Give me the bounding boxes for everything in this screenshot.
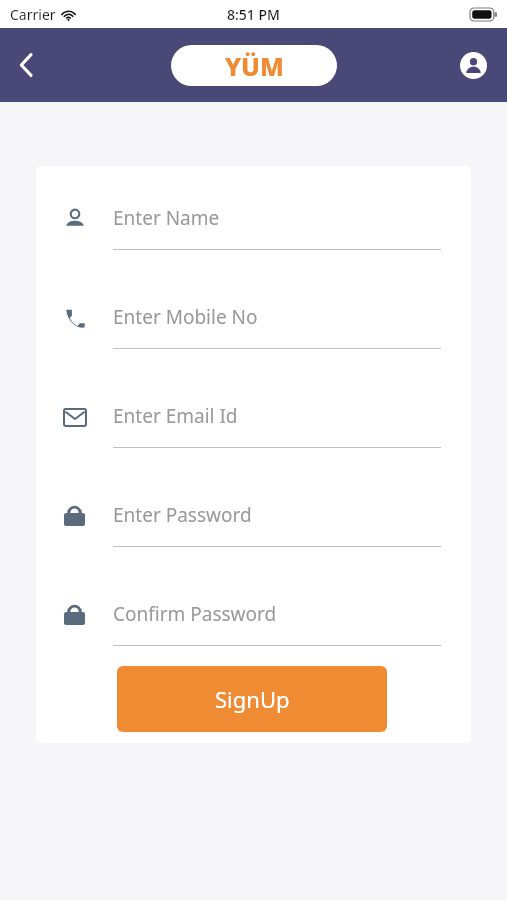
button[interactable]: Profile — [453, 45, 493, 85]
staticText: Enter Email Id — [113, 403, 238, 429]
staticText: Carrier — [10, 5, 56, 24]
staticText: Confirm Password — [113, 601, 277, 627]
button[interactable]: Enter Name — [36, 204, 471, 250]
button[interactable]: Confirm Password — [36, 600, 471, 646]
button[interactable]: Enter Mobile No — [36, 303, 471, 349]
staticText: Enter Name — [113, 205, 220, 231]
staticText: 8:51 PM — [227, 5, 280, 24]
button[interactable]: Enter Password — [36, 501, 471, 547]
staticText: Enter Mobile No — [113, 304, 258, 330]
button[interactable]: Enter Email Id — [36, 402, 471, 448]
staticText: SignUp — [215, 684, 290, 714]
button[interactable]: YÜM — [171, 45, 337, 86]
staticText: YÜM — [225, 49, 284, 83]
button[interactable]: Back — [4, 43, 48, 87]
staticText: Enter Password — [113, 502, 252, 528]
button[interactable]: SignUp — [117, 666, 387, 732]
